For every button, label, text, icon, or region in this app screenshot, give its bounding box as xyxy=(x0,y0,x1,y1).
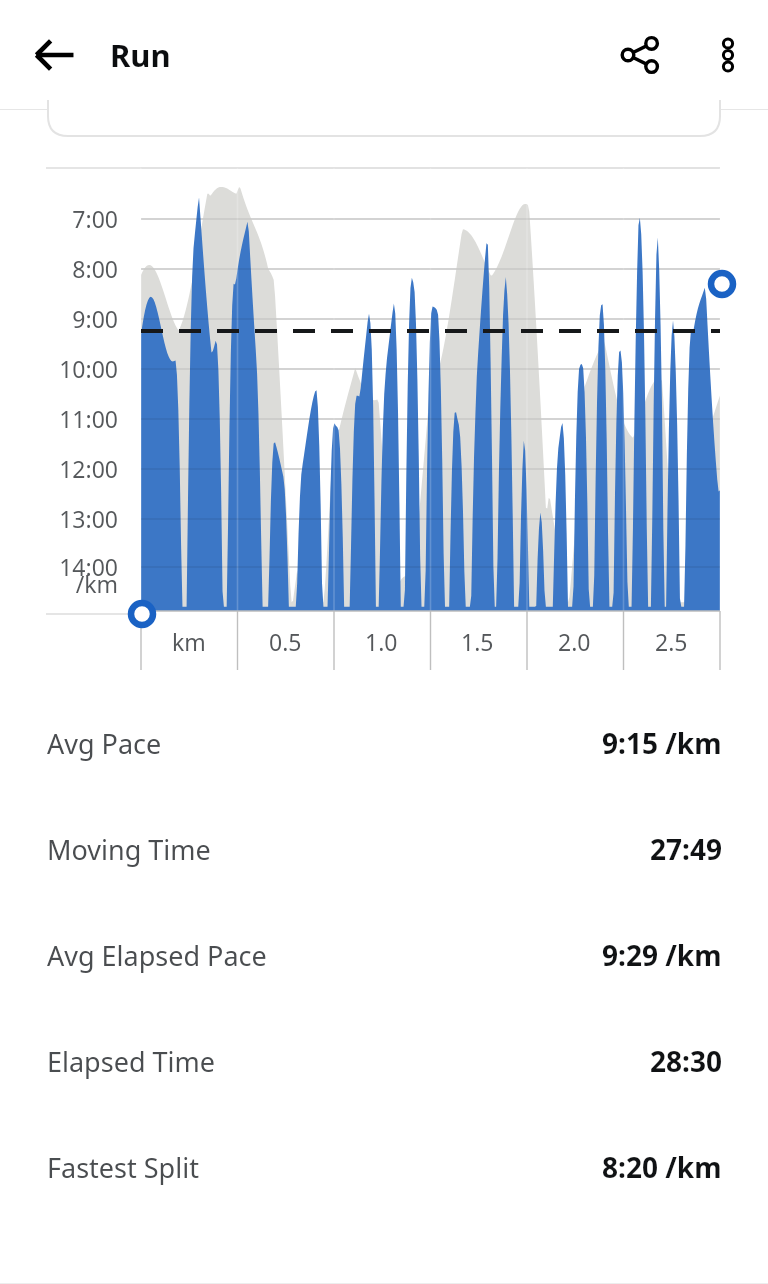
staticText: 8:20 /km xyxy=(602,1148,722,1186)
staticText: 0.5 xyxy=(269,626,302,657)
staticText: 10:00 xyxy=(0,353,118,384)
staticText: Fastest Split xyxy=(47,1149,199,1186)
button[interactable] xyxy=(48,90,720,136)
button[interactable]: Avg Elapsed Pace xyxy=(0,902,768,1008)
staticText: Run xyxy=(110,34,171,76)
staticText: Avg Elapsed Pace xyxy=(47,937,267,974)
staticText: 28:30 xyxy=(650,1042,722,1080)
staticText: 9:15 /km xyxy=(602,724,722,762)
button[interactable]: Avg Pace xyxy=(0,690,768,796)
staticText: 2.5 xyxy=(655,626,688,657)
staticText: 8:00 xyxy=(0,253,118,284)
staticText: 1.0 xyxy=(365,626,398,657)
staticText: 9:00 xyxy=(0,303,118,334)
staticText: 9:29 /km xyxy=(602,936,722,974)
staticText: Avg Pace xyxy=(47,725,162,762)
staticText: 7:00 xyxy=(0,203,118,234)
staticText: /km xyxy=(0,568,118,599)
button[interactable]: Share xyxy=(592,0,688,109)
staticText: Elapsed Time xyxy=(47,1043,215,1080)
staticText: km xyxy=(172,626,206,657)
staticText: 12:00 xyxy=(0,453,118,484)
staticText: Moving Time xyxy=(47,831,211,868)
button[interactable]: Moving Time xyxy=(0,796,768,902)
button[interactable]: More options xyxy=(688,0,768,109)
button[interactable]: Elapsed Time xyxy=(0,1008,768,1114)
staticText: 11:00 xyxy=(0,403,118,434)
staticText: 27:49 xyxy=(650,830,722,868)
staticText: 1.5 xyxy=(461,626,494,657)
staticText: 2.0 xyxy=(558,626,591,657)
staticText: 14:00 xyxy=(0,551,118,582)
button[interactable]: Fastest Split xyxy=(0,1114,768,1220)
button[interactable]: Back xyxy=(0,0,110,109)
staticText: 13:00 xyxy=(0,503,118,534)
